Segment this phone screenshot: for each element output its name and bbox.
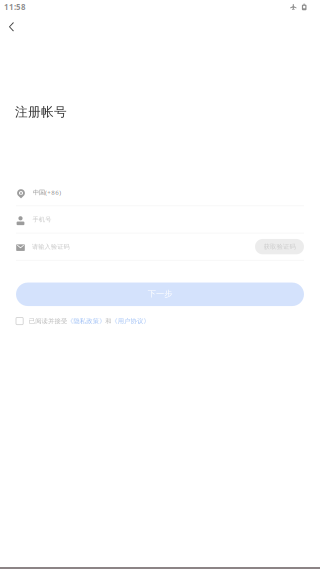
staticText: 《隐私政策》 (67, 317, 105, 325)
staticText: 下一步 (148, 289, 172, 299)
button[interactable]: 获取验证码 (255, 239, 304, 254)
staticText: 11:58 (4, 2, 26, 12)
staticText: 中国(+86) (33, 188, 61, 196)
button[interactable]: Back (1, 14, 23, 36)
button[interactable]: 《用户协议》 (111, 317, 149, 325)
staticText: 和 (105, 317, 111, 325)
staticText: 获取验证码 (264, 243, 295, 251)
staticText: 已阅读并接受 (29, 317, 67, 325)
button[interactable]: Agree to terms (16, 317, 23, 325)
staticText: 注册帐号 (15, 104, 67, 120)
staticText: 请输入验证码 (32, 243, 69, 250)
staticText: 手机号 (32, 216, 51, 223)
button[interactable]: 《隐私政策》 (67, 317, 105, 325)
staticText: 《用户协议》 (111, 317, 149, 325)
button[interactable]: 下一步 (16, 283, 304, 306)
